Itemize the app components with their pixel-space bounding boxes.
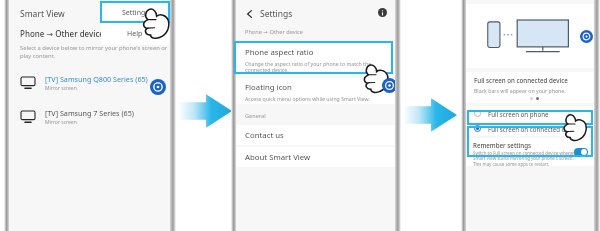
staticText: Phone aspect ratio — [245, 47, 314, 58]
staticText: Full screen on phone — [488, 110, 549, 118]
button[interactable]: Full screen on connected device — [466, 121, 594, 136]
staticText: Change the aspect ratio of your phone to… — [245, 60, 372, 74]
button[interactable]: Contact us — [236, 125, 395, 145]
staticText: Help — [127, 29, 143, 39]
button[interactable] — [234, 41, 393, 74]
staticText: Mirror screen — [45, 85, 77, 92]
button[interactable]: Smart View floating icon — [382, 78, 397, 93]
staticText: [TV] Samsung 7 Series (65) — [45, 108, 134, 118]
staticText: Settings — [260, 8, 293, 20]
button[interactable]: Back — [244, 8, 256, 20]
button[interactable]: Floating icon — [236, 78, 395, 104]
button[interactable]: Remember settings toggle — [574, 148, 588, 156]
staticText: Floating icon — [245, 82, 292, 93]
staticText: Full screen on connected device — [474, 76, 568, 84]
staticText: Settings — [122, 8, 149, 18]
button[interactable]: Phone aspect ratio — [236, 43, 395, 75]
staticText: Full screen on connected device — [488, 125, 581, 133]
button[interactable] — [100, 1, 170, 23]
staticText: Select a device below to mirror your pho… — [20, 44, 168, 60]
button[interactable]: Settings — [101, 2, 169, 23]
staticText: Switch to Full screen on connected devic… — [473, 150, 580, 168]
button[interactable]: Help — [378, 8, 387, 17]
staticText: [TV] Samsung Q800 Series (65) — [45, 74, 148, 84]
button[interactable] — [467, 110, 593, 125]
staticText: Phone → Other device — [245, 28, 303, 36]
button[interactable]: About Smart View — [236, 147, 395, 167]
staticText: General — [245, 112, 266, 120]
button[interactable]: Remember settings — [466, 138, 594, 166]
staticText: Access quick menu options while using Sm… — [245, 95, 370, 102]
button[interactable]: [TV] Samsung Q800 Series (65) — [9, 70, 170, 96]
button[interactable] — [467, 126, 593, 157]
staticText: Black bars will appear on your phone. — [474, 87, 566, 94]
button[interactable]: Full screen on phone — [466, 106, 594, 121]
button[interactable]: Smart View floating icon — [580, 30, 593, 43]
button[interactable]: Help — [101, 23, 169, 44]
staticText: About Smart View — [245, 152, 311, 163]
staticText: Remember settings — [473, 141, 532, 149]
staticText: Phone → Other device — [20, 28, 104, 39]
button[interactable]: Smart View floating icon — [150, 79, 166, 95]
staticText: Smart View — [20, 8, 65, 20]
staticText: Mirror screen — [45, 119, 77, 126]
staticText: Contact us — [245, 130, 284, 141]
button[interactable]: [TV] Samsung 7 Series (65) — [9, 104, 170, 130]
